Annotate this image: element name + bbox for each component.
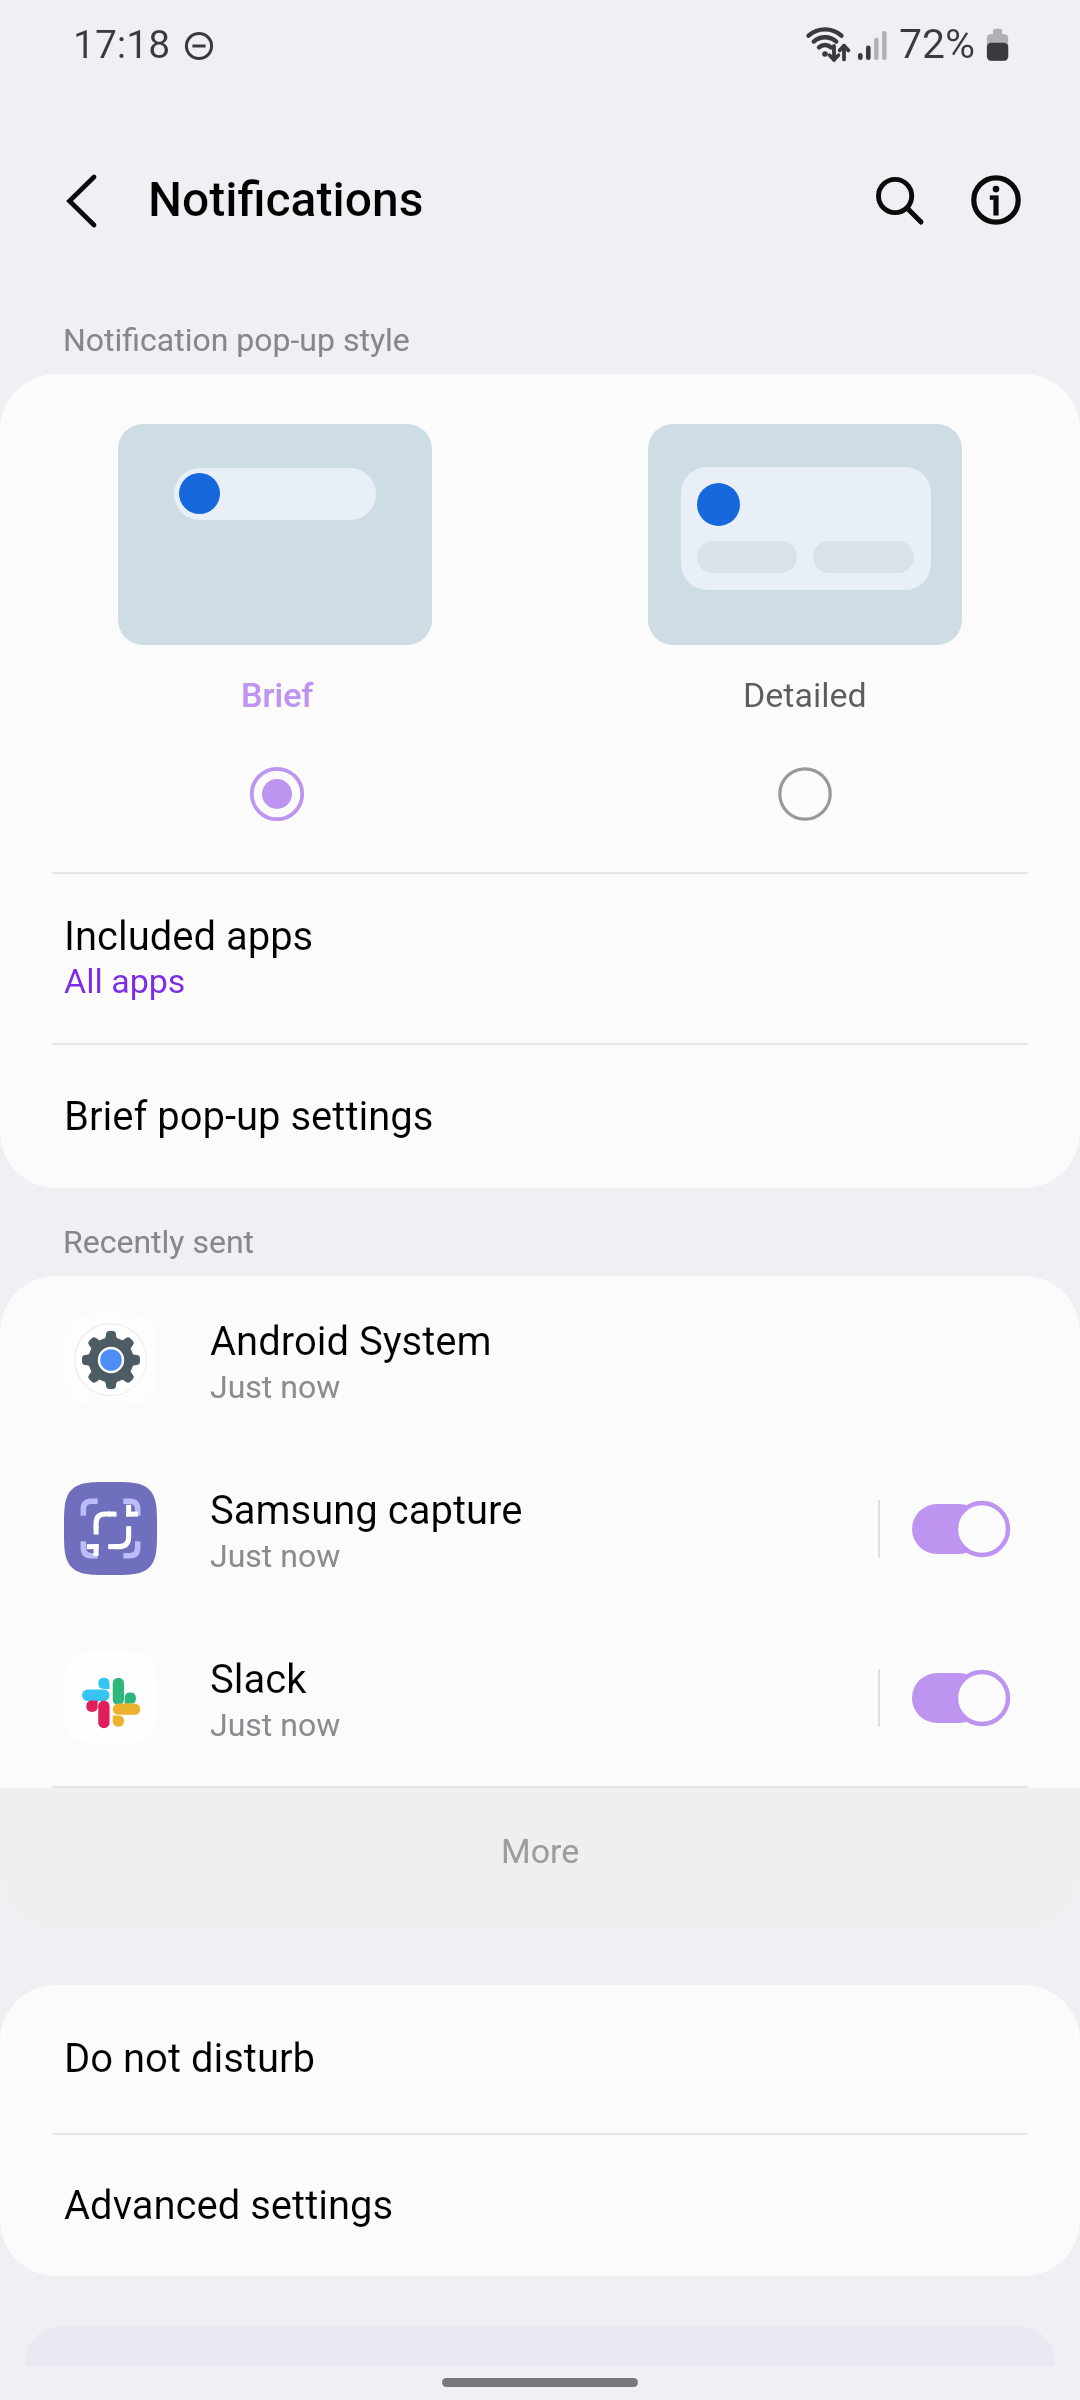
staticText: Detailed — [743, 675, 867, 715]
staticText: 72% — [899, 20, 976, 68]
staticText: More — [501, 1831, 580, 1871]
staticText: Brief — [241, 675, 314, 715]
button[interactable]: Included apps — [0, 874, 1080, 1042]
staticText: Slack — [210, 1656, 307, 1703]
staticText: Advanced settings — [64, 2182, 394, 2229]
staticText: Just now — [210, 1368, 341, 1406]
button[interactable]: Slack — [0, 1614, 1080, 1782]
button[interactable]: Android System — [0, 1276, 1080, 1444]
button[interactable]: More — [0, 1788, 1080, 1930]
staticText: Recently sent — [63, 1223, 255, 1261]
staticText: 17:18 — [73, 22, 171, 68]
button[interactable]: Toggle Samsung capture notifications — [902, 1491, 1024, 1567]
button[interactable] — [648, 424, 962, 645]
button[interactable] — [118, 424, 432, 645]
staticText: All apps — [64, 961, 186, 1001]
staticText: Just now — [210, 1537, 341, 1575]
button[interactable]: Detailed — [765, 754, 845, 834]
staticText: Android System — [210, 1318, 492, 1365]
staticText: Just now — [210, 1706, 341, 1744]
staticText: Notifications — [148, 171, 424, 227]
button[interactable]: Samsung capture — [0, 1445, 1080, 1613]
staticText: Do not disturb — [64, 2035, 315, 2082]
staticText: Samsung capture — [210, 1487, 523, 1534]
button[interactable]: Search — [850, 156, 942, 248]
staticText: Included apps — [64, 913, 314, 960]
button[interactable]: Brief pop-up settings — [0, 1045, 1080, 1188]
staticText: Notification pop-up style — [63, 321, 410, 359]
button[interactable]: Toggle Slack notifications — [902, 1660, 1024, 1736]
button[interactable]: Brief selected — [237, 754, 317, 834]
button[interactable]: Advanced settings — [0, 2135, 1080, 2276]
staticText: Brief pop-up settings — [64, 1093, 434, 1140]
button[interactable]: Back — [37, 156, 129, 248]
button[interactable]: Do not disturb — [0, 1985, 1080, 2131]
button[interactable]: Information — [950, 156, 1042, 248]
